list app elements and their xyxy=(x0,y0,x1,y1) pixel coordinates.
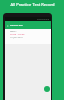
staticText: Practice Test xyxy=(10,24,23,27)
button[interactable]: Add xyxy=(44,86,50,92)
button[interactable]: Back xyxy=(5,23,10,28)
staticText: All Practice Test Record xyxy=(10,2,55,8)
staticText: Test 1 xyxy=(10,29,17,32)
button[interactable]: Test 1 xyxy=(5,29,51,44)
staticText: Score : 40/50 xyxy=(10,32,25,35)
staticText: 12 Jan 2021 xyxy=(10,35,23,38)
